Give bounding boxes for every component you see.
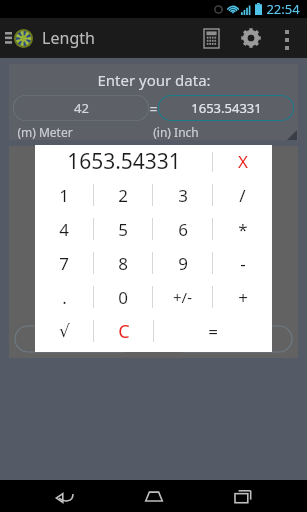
staticText: X — [238, 150, 248, 173]
button[interactable]: Back — [39, 480, 89, 512]
staticText: √ — [59, 321, 70, 341]
staticText: C — [118, 319, 130, 344]
staticText: 6 — [178, 218, 188, 241]
staticText: Enter your data: — [97, 70, 211, 90]
button[interactable]: 1653.54331 — [158, 95, 294, 121]
button[interactable]: Calculator — [191, 18, 231, 58]
button[interactable]: + — [213, 280, 272, 314]
button[interactable]: 1 — [35, 178, 93, 212]
staticText: +/- — [173, 287, 192, 307]
staticText: 7 — [59, 252, 69, 275]
button[interactable]: √ — [35, 314, 93, 348]
button[interactable]: More options — [271, 22, 303, 54]
button[interactable]: 9 — [153, 246, 212, 280]
button[interactable]: 0 — [94, 280, 152, 314]
staticText: Length — [42, 27, 95, 49]
button[interactable]: / — [213, 178, 272, 212]
button[interactable]: * — [213, 212, 272, 246]
staticText: 5 — [118, 218, 128, 241]
button[interactable]: Home — [129, 480, 179, 512]
staticText: . — [62, 286, 67, 309]
staticText: - — [240, 252, 246, 275]
button[interactable]: 4 — [35, 212, 93, 246]
button[interactable]: Recent apps — [218, 480, 268, 512]
button[interactable]: +/- — [153, 280, 212, 314]
staticText: 3 — [178, 184, 188, 207]
button[interactable]: X — [213, 145, 272, 178]
staticText: 0 — [118, 286, 128, 309]
staticText: / — [239, 184, 246, 207]
button[interactable]: 6 — [153, 212, 212, 246]
button[interactable]: Up — [4, 23, 34, 53]
button[interactable]: Settings — [231, 18, 271, 58]
button[interactable]: 3 — [153, 178, 212, 212]
button[interactable]: = — [154, 314, 272, 348]
staticText: 22:54 — [266, 0, 300, 18]
staticText: 1653.54331 — [191, 99, 262, 117]
staticText: 1653.54331 — [67, 147, 181, 176]
button[interactable]: . — [35, 280, 93, 314]
button[interactable]: 8 — [94, 246, 152, 280]
staticText: + — [238, 286, 248, 309]
staticText: (in) Inch — [153, 124, 199, 140]
staticText: 4 — [59, 218, 69, 241]
staticText: = — [208, 320, 218, 343]
staticText: 42 — [74, 99, 89, 117]
button[interactable]: 42 — [13, 95, 149, 121]
staticText: 9 — [178, 252, 188, 275]
button[interactable]: 1653.54331 — [35, 145, 212, 178]
staticText: = — [149, 99, 158, 118]
button[interactable]: 7 — [35, 246, 93, 280]
staticText: 1 — [59, 184, 69, 207]
staticText: * — [238, 218, 248, 241]
staticText: 2 — [118, 184, 128, 207]
button[interactable]: 2 — [94, 178, 152, 212]
button[interactable]: C — [94, 314, 153, 348]
staticText: 8 — [118, 252, 128, 275]
button[interactable]: 5 — [94, 212, 152, 246]
button[interactable]: - — [213, 246, 272, 280]
staticText: (m) Meter — [17, 124, 73, 140]
